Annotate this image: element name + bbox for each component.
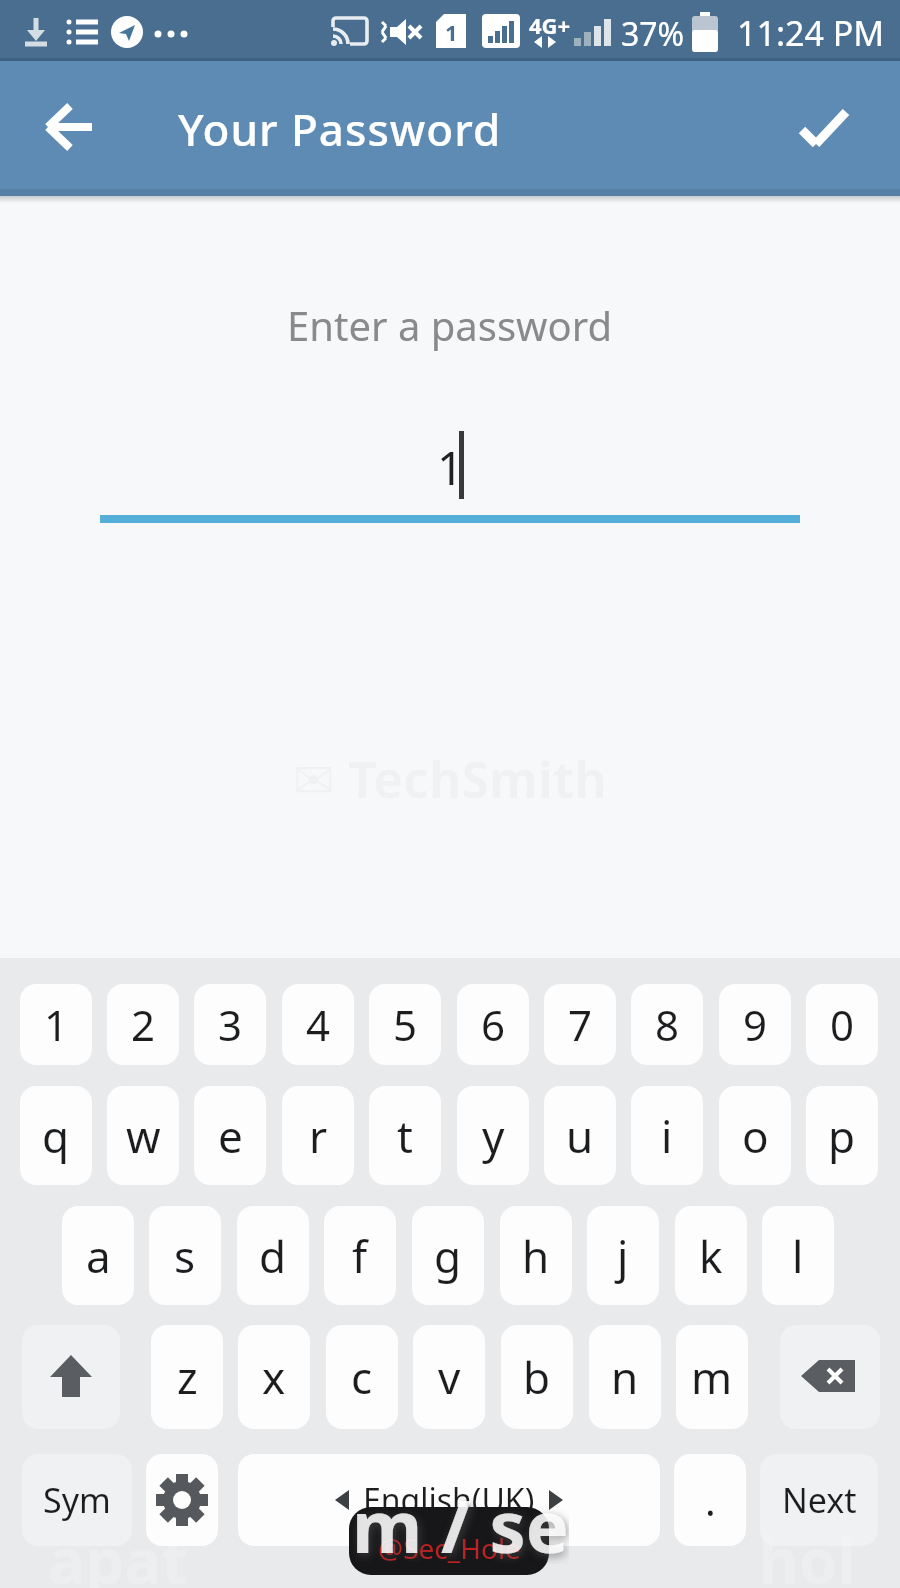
staticText: f	[352, 1226, 368, 1286]
button[interactable]	[146, 1454, 218, 1546]
staticText: c	[351, 1347, 373, 1407]
button[interactable]: 0	[806, 984, 878, 1065]
staticText: a	[86, 1226, 111, 1286]
button[interactable]	[780, 1325, 880, 1429]
button[interactable]	[22, 1325, 120, 1429]
staticText: e	[218, 1106, 243, 1166]
staticText: English(UK)	[363, 1478, 535, 1522]
button[interactable]: 6	[457, 984, 529, 1065]
staticText: m	[691, 1347, 733, 1407]
staticText: x	[262, 1347, 286, 1407]
button[interactable]: c	[326, 1325, 398, 1429]
button[interactable]: e	[194, 1086, 266, 1185]
staticText: 1	[445, 17, 458, 47]
button[interactable]: Next	[760, 1454, 878, 1546]
button[interactable]: .	[674, 1454, 746, 1546]
staticText: 11:24 PM	[737, 10, 885, 52]
button[interactable]: 1	[20, 984, 92, 1065]
button[interactable]: a	[62, 1206, 134, 1305]
staticText: 2	[131, 996, 156, 1053]
button[interactable]: u	[544, 1086, 616, 1185]
staticText: _hol	[733, 1518, 857, 1588]
staticText: n	[611, 1347, 639, 1407]
staticText: r	[309, 1106, 328, 1166]
staticText: q	[42, 1106, 70, 1166]
button[interactable]: w	[107, 1086, 179, 1185]
button[interactable]	[782, 87, 866, 167]
button[interactable]: s	[149, 1206, 221, 1305]
staticText: 3	[218, 996, 243, 1053]
button[interactable]: j	[587, 1206, 659, 1305]
staticText: 1	[44, 996, 69, 1053]
staticText: 7	[568, 996, 593, 1053]
button[interactable]: 5	[369, 984, 441, 1065]
staticText: 0	[830, 996, 855, 1053]
button[interactable]: p	[806, 1086, 878, 1185]
button[interactable]: g	[412, 1206, 484, 1305]
button[interactable]: r	[282, 1086, 354, 1185]
button[interactable]: 4	[282, 984, 354, 1065]
staticText: Enter a password	[287, 298, 613, 352]
button[interactable]: x	[238, 1325, 310, 1429]
button[interactable]: y	[457, 1086, 529, 1185]
button[interactable]: z	[151, 1325, 223, 1429]
staticText: k	[699, 1226, 723, 1286]
button[interactable]: n	[589, 1325, 661, 1429]
button[interactable]: Sym	[22, 1454, 132, 1546]
staticText: 8	[655, 996, 680, 1053]
staticText: 4	[306, 996, 331, 1053]
button[interactable]: l	[762, 1206, 834, 1305]
staticText: m / se	[352, 1476, 569, 1564]
button[interactable]: f	[324, 1206, 396, 1305]
staticText: w	[126, 1106, 161, 1166]
button[interactable]: @Sec_Hole	[349, 1507, 549, 1575]
staticText: 1	[437, 436, 464, 494]
staticText: .	[705, 1473, 716, 1527]
staticText: Your Password	[178, 99, 502, 157]
staticText: Sym	[43, 1477, 111, 1523]
staticText: l	[792, 1226, 804, 1286]
button[interactable]: d	[237, 1206, 309, 1305]
staticText: b	[523, 1347, 551, 1407]
button[interactable]: 7	[544, 984, 616, 1065]
staticText: 6	[481, 996, 506, 1053]
button[interactable]: o	[719, 1086, 791, 1185]
button[interactable]: 9	[719, 984, 791, 1065]
staticText: d	[259, 1226, 287, 1286]
button[interactable]: 3	[194, 984, 266, 1065]
staticText: @Sec_Hole	[378, 1529, 521, 1567]
button[interactable]: h	[500, 1206, 572, 1305]
staticText: y	[482, 1106, 505, 1166]
button[interactable]: b	[501, 1325, 573, 1429]
staticText: Next	[782, 1477, 857, 1523]
staticText: 37%	[621, 12, 685, 50]
staticText: 5	[393, 996, 418, 1053]
staticText: v	[438, 1347, 461, 1407]
staticText: j	[617, 1226, 629, 1286]
button[interactable]: v	[413, 1325, 485, 1429]
staticText: t	[397, 1106, 413, 1166]
staticText: g	[434, 1226, 462, 1286]
staticText: s	[174, 1226, 196, 1286]
staticText: 9	[743, 996, 768, 1053]
staticText: 4G+	[529, 10, 571, 38]
button[interactable]: t	[369, 1086, 441, 1185]
button[interactable]: m	[676, 1325, 748, 1429]
button[interactable]: 8	[631, 984, 703, 1065]
staticText: z	[177, 1347, 198, 1407]
staticText: u	[566, 1106, 594, 1166]
button[interactable]	[30, 87, 110, 167]
staticText: h	[522, 1226, 550, 1286]
staticText: p	[828, 1106, 856, 1166]
button[interactable]: i	[631, 1086, 703, 1185]
staticText: o	[742, 1106, 769, 1166]
button[interactable]: k	[675, 1206, 747, 1305]
button[interactable]: 2	[107, 984, 179, 1065]
staticText: apat	[48, 1518, 189, 1588]
staticText: i	[661, 1106, 673, 1166]
button[interactable]: q	[20, 1086, 92, 1185]
button[interactable]: English(UK)	[238, 1454, 660, 1546]
